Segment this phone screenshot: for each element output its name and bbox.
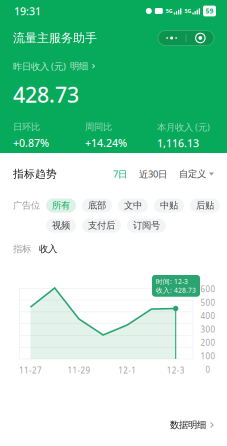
- staticText: 11-27: [19, 365, 42, 376]
- staticText: 时间: 12-3: [156, 277, 188, 286]
- button[interactable]: 底部: [82, 198, 112, 212]
- staticText: 300: [200, 324, 215, 335]
- staticText: +14.24%: [85, 136, 127, 150]
- button[interactable]: 7日: [107, 168, 133, 180]
- staticText: 周同比: [85, 121, 112, 133]
- staticText: 5G: [166, 7, 173, 15]
- button[interactable]: 近30日: [133, 168, 173, 180]
- button[interactable]: 后贴: [190, 198, 220, 212]
- staticText: 500: [200, 297, 215, 308]
- staticText: 200: [200, 337, 215, 348]
- staticText: 昨日收入 (元): [13, 60, 66, 72]
- button[interactable]: 自定义: [173, 168, 214, 180]
- staticText: +0.87%: [13, 136, 49, 150]
- staticText: 收入: 428.73: [156, 286, 196, 295]
- staticText: 428.73: [13, 80, 79, 109]
- staticText: 支付后: [88, 220, 115, 231]
- staticText: 视频: [52, 220, 70, 231]
- staticText: 自定义: [179, 168, 206, 180]
- staticText: 广告位: [13, 200, 40, 211]
- staticText: 11-29: [67, 365, 90, 376]
- staticText: 明细: [70, 60, 88, 72]
- button[interactable]: 文中: [118, 198, 148, 212]
- staticText: 59: [205, 7, 213, 15]
- button[interactable]: 收入: [39, 243, 57, 255]
- staticText: 近30日: [139, 168, 167, 180]
- button[interactable]: 中贴: [154, 198, 184, 212]
- staticText: 收入: [39, 243, 57, 255]
- button[interactable]: 订阅号: [127, 218, 166, 232]
- staticText: 600: [200, 284, 215, 294]
- staticText: 流量主服务助手: [13, 31, 97, 45]
- staticText: 400: [200, 311, 215, 321]
- button[interactable]: 昨日收入 (元): [13, 60, 214, 72]
- staticText: 本月收入 (元): [157, 121, 210, 133]
- button[interactable]: More and close: [158, 30, 214, 45]
- button[interactable]: 视频: [46, 218, 76, 232]
- staticText: 底部: [88, 200, 106, 211]
- staticText: 日环比: [13, 121, 40, 133]
- staticText: 文中: [124, 200, 142, 211]
- button[interactable]: 支付后: [82, 218, 121, 232]
- button[interactable]: 数据明细: [170, 419, 214, 431]
- staticText: 中贴: [160, 200, 178, 211]
- staticText: 后贴: [196, 200, 214, 211]
- staticText: 0: [205, 364, 210, 375]
- staticText: 7日: [113, 168, 127, 180]
- staticText: 订阅号: [133, 220, 160, 231]
- staticText: 指标趋势: [13, 167, 57, 180]
- staticText: 12-3: [167, 365, 185, 376]
- staticText: 所有: [52, 200, 70, 211]
- staticText: 数据明细: [170, 419, 206, 431]
- button[interactable]: 所有: [46, 198, 76, 212]
- staticText: 指标: [13, 243, 31, 255]
- staticText: 100: [200, 351, 215, 361]
- staticText: 12-1: [118, 365, 136, 376]
- staticText: 1,116.13: [157, 136, 199, 150]
- staticText: 5G: [184, 7, 191, 15]
- staticText: 19:31: [14, 4, 41, 18]
